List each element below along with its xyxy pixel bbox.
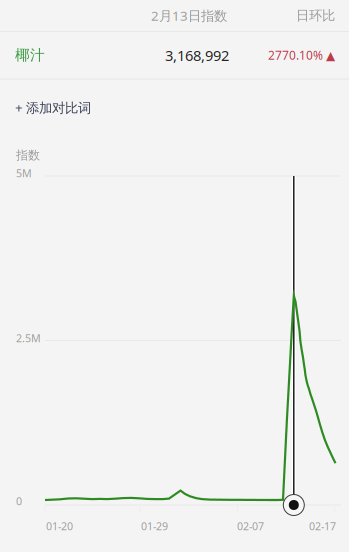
staticText: 01-20 — [46, 519, 73, 533]
staticText: 椰汁 — [15, 46, 45, 64]
staticText: 2.5M — [16, 331, 41, 345]
staticText: 02-07 — [237, 519, 264, 533]
staticText: 5M — [16, 166, 32, 180]
staticText: 02-17 — [309, 519, 336, 533]
staticText: 01-29 — [141, 519, 168, 533]
staticText: 日环比 — [296, 7, 335, 24]
staticText: 2770.10% ▲ — [268, 47, 335, 63]
staticText: 0 — [16, 494, 22, 508]
staticText: + 添加对比词 — [15, 98, 91, 116]
staticText: 3,168,992 — [165, 45, 229, 65]
staticText: 2月13日指数 — [151, 7, 227, 24]
button[interactable]: + 添加对比词 — [0, 79, 349, 135]
staticText: 指数 — [16, 148, 40, 163]
